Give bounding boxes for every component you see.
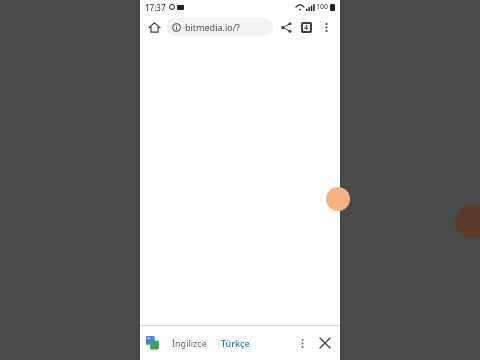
button[interactable]: More options [316, 17, 336, 37]
staticText: İngilizce [172, 337, 207, 349]
button[interactable]: Türkçe [218, 334, 253, 352]
staticText: 4 [304, 23, 309, 33]
staticText: 17:37 [145, 2, 166, 13]
button[interactable]: İngilizce [169, 334, 210, 352]
button[interactable]: Tabs [296, 17, 316, 37]
button[interactable]: Home [144, 17, 164, 37]
button[interactable]: Close [313, 331, 337, 355]
staticText: bitmedia.io/?r=kmg9 [185, 21, 267, 33]
button[interactable]: Google Translate [145, 335, 161, 351]
button[interactable]: Translate options [291, 332, 313, 354]
staticText: Türkçe [221, 337, 250, 349]
button[interactable]: Share [276, 17, 296, 37]
button[interactable]: bitmedia.io/?r=kmg9 [166, 18, 273, 36]
staticText: 100 [316, 2, 329, 12]
